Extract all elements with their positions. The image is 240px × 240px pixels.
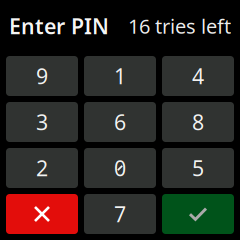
staticText: 0: [114, 154, 126, 182]
staticText: 1: [114, 62, 126, 90]
button[interactable]: 0: [84, 148, 156, 188]
button[interactable]: Cancel: [6, 194, 78, 234]
button[interactable]: 6: [84, 102, 156, 142]
button[interactable]: 7: [84, 194, 156, 234]
staticText: 4: [192, 62, 204, 90]
button[interactable]: 8: [162, 102, 234, 142]
staticText: 9: [36, 62, 48, 90]
staticText: Enter PIN: [9, 12, 109, 40]
button[interactable]: 3: [6, 102, 78, 142]
staticText: 6: [114, 108, 126, 136]
staticText: 16 tries left: [128, 13, 231, 39]
button[interactable]: Confirm: [162, 194, 234, 234]
button[interactable]: 5: [162, 148, 234, 188]
button[interactable]: 1: [84, 56, 156, 96]
staticText: 7: [114, 200, 126, 228]
staticText: 8: [192, 108, 204, 136]
button[interactable]: 4: [162, 56, 234, 96]
staticText: 3: [36, 108, 48, 136]
staticText: 5: [192, 154, 204, 182]
staticText: 2: [36, 154, 48, 182]
button[interactable]: 2: [6, 148, 78, 188]
button[interactable]: 9: [6, 56, 78, 96]
